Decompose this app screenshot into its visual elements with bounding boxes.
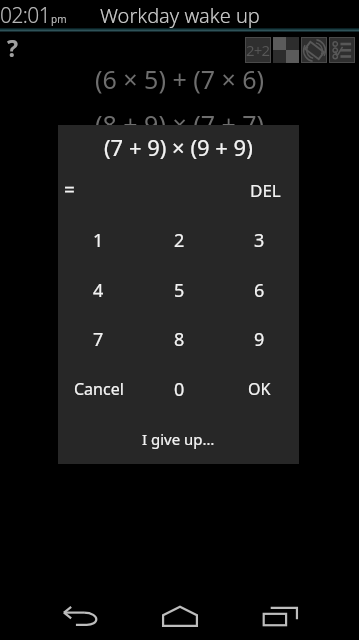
staticText: (6 × 5) + (7 × 6): [95, 62, 265, 96]
button[interactable]: Home: [148, 596, 212, 636]
button[interactable]: DEL: [231, 168, 299, 212]
staticText: pm: [51, 12, 67, 26]
staticText: 2+2: [246, 40, 270, 60]
button[interactable]: 2: [139, 216, 219, 264]
staticText: 8: [174, 327, 185, 352]
button[interactable]: 8: [139, 315, 219, 363]
button[interactable]: Help: [0, 32, 25, 58]
button[interactable]: Back: [48, 596, 112, 636]
staticText: 4: [93, 278, 104, 303]
button[interactable]: 4: [58, 266, 139, 314]
staticText: 3: [254, 228, 265, 253]
button[interactable]: Math puzzle: [245, 37, 271, 63]
staticText: ?: [7, 32, 18, 58]
button[interactable]: 0: [139, 365, 219, 413]
button[interactable]: =: [57, 168, 82, 212]
button[interactable]: Recents: [248, 596, 312, 636]
staticText: 0: [174, 377, 185, 402]
staticText: 02:01: [0, 1, 51, 30]
button[interactable]: Quiz puzzle: [329, 37, 355, 63]
staticText: DEL: [250, 179, 281, 202]
button[interactable]: Cancel: [58, 365, 139, 413]
button[interactable]: 3: [219, 216, 299, 264]
button[interactable]: 6: [219, 266, 299, 314]
staticText: Cancel: [74, 378, 124, 400]
staticText: 2: [174, 228, 185, 253]
staticText: (7 + 9) × (9 + 9): [104, 132, 253, 162]
staticText: I give up…: [142, 429, 215, 449]
button[interactable]: I give up…: [58, 415, 299, 463]
staticText: 1: [93, 228, 104, 253]
staticText: 6: [254, 278, 265, 303]
staticText: OK: [248, 378, 271, 400]
button[interactable]: OK: [219, 365, 299, 413]
staticText: (8 + 9) × (7 + 7): [95, 107, 265, 141]
staticText: =: [64, 177, 75, 203]
staticText: 7: [93, 327, 104, 352]
button[interactable]: 9: [219, 315, 299, 363]
staticText: 5: [174, 278, 185, 303]
button[interactable]: 1: [58, 216, 139, 264]
button[interactable]: 5: [139, 266, 219, 314]
button[interactable]: Memory puzzle: [273, 37, 299, 63]
staticText: 9: [254, 327, 265, 352]
button[interactable]: 7: [58, 315, 139, 363]
staticText: Workday wake up: [100, 2, 260, 29]
button[interactable]: Shape puzzle: [301, 37, 327, 63]
